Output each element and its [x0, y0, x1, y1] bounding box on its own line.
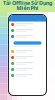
staticText: Miễn Phí: [16, 4, 38, 12]
button[interactable]: [9, 27, 46, 33]
button[interactable]: [9, 48, 46, 54]
button[interactable]: [9, 66, 46, 72]
button[interactable]: [9, 33, 46, 39]
button[interactable]: [13, 41, 41, 45]
button[interactable]: [9, 60, 46, 66]
button[interactable]: [9, 54, 46, 60]
button[interactable]: [9, 72, 46, 78]
button[interactable]: [9, 21, 46, 27]
staticText: Tải Offline Sử Dụng: [3, 0, 52, 7]
